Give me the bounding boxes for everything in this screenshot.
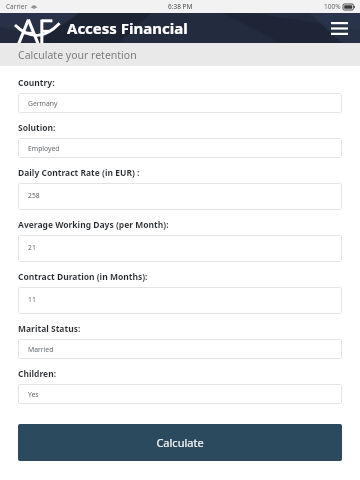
staticText: Germany (28, 99, 58, 108)
button[interactable]: Employed (18, 138, 342, 158)
button[interactable]: Calculate (18, 424, 342, 461)
staticText: Contract Duration (in Months): (18, 271, 148, 283)
staticText: Average Working Days (per Month): (18, 219, 169, 231)
button[interactable]: Open navigation menu (327, 16, 351, 40)
staticText: Employed (28, 144, 60, 153)
staticText: Marital Status: (18, 323, 81, 335)
staticText: 6:38 PM (168, 2, 193, 11)
staticText: 11 (28, 295, 36, 304)
button[interactable]: Married (18, 339, 342, 359)
staticText: 21 (28, 243, 36, 252)
staticText: Solution: (18, 122, 56, 134)
staticText: Calculate your retention (18, 48, 137, 62)
staticText: Children: (18, 368, 57, 380)
button[interactable]: Germany (18, 93, 342, 113)
button[interactable]: Yes (18, 384, 342, 404)
staticText: Married (28, 345, 54, 354)
staticText: Daily Contract Rate (in EUR) : (18, 167, 140, 179)
staticText: 100% (324, 2, 341, 11)
button[interactable]: 21 (18, 235, 342, 262)
staticText: 258 (28, 191, 40, 200)
staticText: Carrier (6, 2, 28, 11)
staticText: Country: (18, 77, 55, 89)
staticText: Access Financial (67, 18, 188, 38)
button[interactable]: 11 (18, 287, 342, 314)
staticText: Yes (28, 390, 39, 399)
button[interactable]: 258 (18, 183, 342, 210)
staticText: Calculate (156, 435, 204, 450)
